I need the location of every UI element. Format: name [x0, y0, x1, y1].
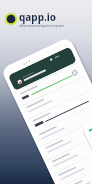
staticText: qapp.io: [19, 10, 56, 24]
staticText: office area management system: [19, 24, 65, 28]
other: qapp.io logo: [5, 13, 17, 25]
button[interactable]: qapp.io logo: [5, 10, 65, 28]
